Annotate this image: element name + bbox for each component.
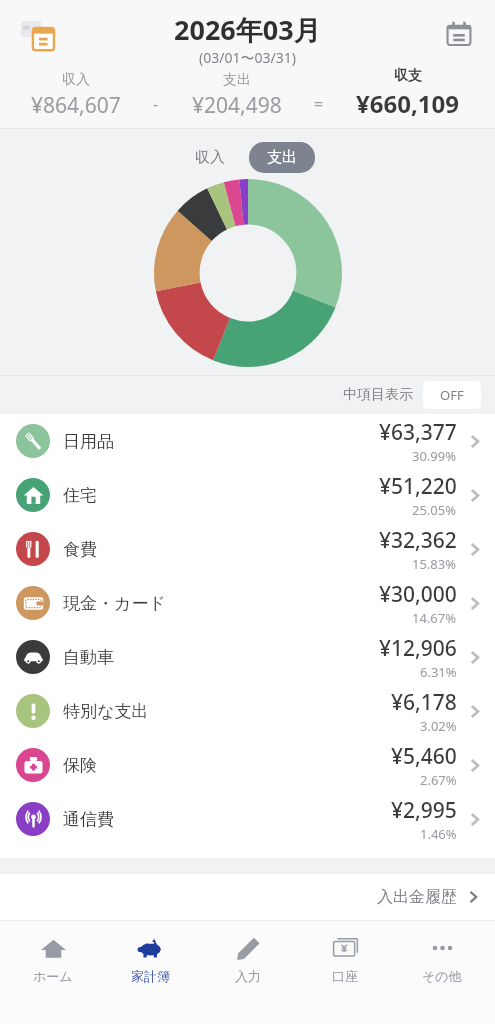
- staticText: 通信費: [63, 809, 114, 830]
- staticText: ¥2,995: [391, 796, 457, 825]
- button[interactable]: 食費: [0, 522, 495, 576]
- button[interactable]: 保険: [0, 738, 495, 792]
- button[interactable]: 入力: [204, 933, 292, 986]
- button[interactable]: 口座: [301, 933, 389, 986]
- staticText: 現金・カード: [63, 593, 166, 614]
- button[interactable]: 収入: [181, 142, 239, 173]
- staticText: 収入: [62, 71, 90, 89]
- staticText: 食費: [63, 539, 97, 560]
- staticText: 1.46%: [420, 825, 457, 843]
- staticText: 中項目表示: [343, 386, 413, 404]
- button[interactable]: Calendar: [437, 12, 481, 56]
- staticText: ¥32,362: [379, 526, 457, 555]
- button[interactable]: 家計簿: [106, 933, 194, 986]
- staticText: 家計簿: [131, 968, 170, 984]
- staticText: 支出: [223, 71, 251, 89]
- staticText: ¥51,220: [379, 472, 457, 501]
- staticText: 収支: [394, 67, 422, 85]
- staticText: 住宅: [63, 485, 97, 506]
- staticText: OFF: [440, 386, 464, 404]
- staticText: ¥660,109: [356, 87, 459, 120]
- button[interactable]: ホーム: [9, 933, 97, 986]
- staticText: ホーム: [33, 968, 73, 984]
- staticText: 14.67%: [412, 609, 457, 627]
- staticText: 15.83%: [412, 555, 457, 573]
- staticText: ¥5,460: [391, 742, 457, 771]
- staticText: 25.05%: [412, 501, 457, 519]
- staticText: =: [314, 93, 324, 115]
- staticText: 収入: [195, 148, 225, 167]
- staticText: -: [153, 93, 159, 115]
- button[interactable]: Select month: [14, 12, 62, 60]
- staticText: ¥6,178: [391, 688, 457, 717]
- staticText: 自動車: [63, 647, 114, 668]
- staticText: 30.99%: [412, 447, 457, 465]
- button[interactable]: 自動車: [0, 630, 495, 684]
- button[interactable]: その他: [398, 933, 486, 986]
- staticText: 支出: [267, 148, 297, 167]
- staticText: 特別な支出: [63, 701, 149, 722]
- staticText: ¥864,607: [31, 91, 121, 120]
- button[interactable]: 通信費: [0, 792, 495, 846]
- button[interactable]: 特別な支出: [0, 684, 495, 738]
- button[interactable]: 入出金履歴: [0, 874, 495, 920]
- staticText: 入出金履歴: [377, 887, 457, 907]
- staticText: (03/01〜03/31): [199, 48, 296, 67]
- staticText: ¥30,000: [379, 580, 457, 609]
- button[interactable]: 住宅: [0, 468, 495, 522]
- staticText: ¥63,377: [379, 418, 457, 447]
- button[interactable]: OFF: [423, 381, 481, 409]
- staticText: 入力: [235, 968, 261, 984]
- staticText: 口座: [332, 968, 358, 984]
- staticText: 2.67%: [420, 771, 457, 789]
- staticText: 保険: [63, 755, 97, 776]
- staticText: 2026年03月: [174, 11, 321, 48]
- button[interactable]: 日用品: [0, 414, 495, 468]
- button[interactable]: 現金・カード: [0, 576, 495, 630]
- staticText: ¥204,498: [192, 91, 282, 120]
- button[interactable]: 支出: [249, 142, 315, 173]
- staticText: 6.31%: [420, 663, 457, 681]
- staticText: ¥12,906: [379, 634, 457, 663]
- staticText: 日用品: [63, 431, 114, 452]
- staticText: 3.02%: [420, 717, 457, 735]
- staticText: その他: [422, 968, 462, 984]
